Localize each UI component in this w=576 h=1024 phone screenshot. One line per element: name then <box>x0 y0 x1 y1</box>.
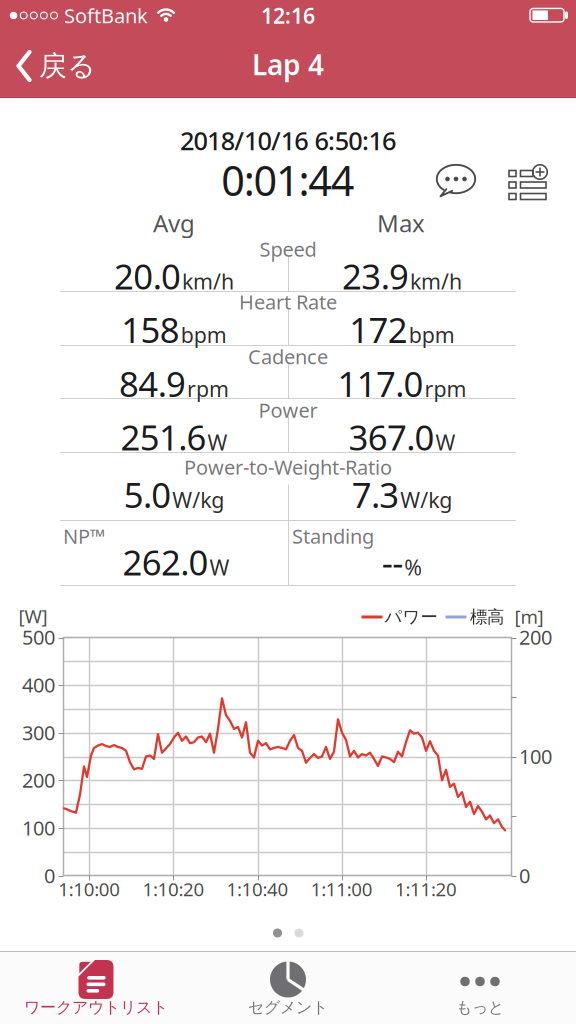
button[interactable]: 戻る <box>16 49 96 83</box>
staticText: Power-to-Weight-Ratio <box>184 454 392 480</box>
staticText: 12:16 <box>261 1 315 30</box>
staticText: 0:01:44 <box>221 153 355 207</box>
staticText: 標高 <box>470 606 504 628</box>
staticText: 1:10:20 <box>142 877 204 901</box>
staticText: 100 <box>519 743 552 769</box>
staticText: 5.0 <box>124 471 171 517</box>
staticText: [W] <box>18 604 47 628</box>
button[interactable]: もっと <box>384 952 576 1024</box>
staticText: 158 <box>121 306 180 352</box>
staticText: 戻る <box>39 49 96 83</box>
staticText: 262.0 <box>122 539 209 585</box>
staticText: bpm <box>181 320 227 349</box>
staticText: 7.3 <box>352 471 399 517</box>
staticText: 400 <box>22 671 55 698</box>
staticText: 367.0 <box>348 414 435 460</box>
staticText: 1:11:00 <box>311 877 373 901</box>
staticText: km/h <box>410 267 462 295</box>
staticText: 23.9 <box>342 253 409 299</box>
staticText: 172 <box>349 306 408 352</box>
staticText: 1:11:20 <box>395 877 457 901</box>
staticText: 500 <box>22 624 55 650</box>
staticText: 0 <box>519 862 530 889</box>
staticText: 117.0 <box>337 360 424 406</box>
button[interactable]: ワークアウトリスト <box>0 952 192 1024</box>
staticText: もっと <box>456 998 504 1017</box>
staticText: -- <box>382 539 403 585</box>
staticText: rpm <box>187 374 229 403</box>
button[interactable]: セグメント <box>192 952 384 1024</box>
staticText: 200 <box>22 767 55 793</box>
staticText: % <box>404 553 422 581</box>
staticText: W/kg <box>172 485 224 514</box>
staticText: セグメント <box>248 998 328 1017</box>
staticText: 1:10:00 <box>58 877 120 901</box>
staticText: 251.6 <box>120 414 207 460</box>
staticText: SoftBank <box>64 2 148 29</box>
staticText: 20.0 <box>114 253 181 299</box>
button[interactable] <box>436 164 476 200</box>
staticText: NP™ <box>63 523 105 549</box>
staticText: km/h <box>182 267 234 295</box>
staticText: 84.9 <box>119 360 186 406</box>
staticText: W <box>208 428 228 456</box>
staticText: W <box>210 553 230 581</box>
staticText: 2018/10/16 6:50:16 <box>180 124 396 157</box>
staticText: Power <box>258 397 317 423</box>
staticText: 1:10:40 <box>227 877 289 901</box>
staticText: Speed <box>259 236 316 262</box>
staticText: W <box>436 428 456 456</box>
staticText: [m] <box>514 604 543 629</box>
staticText: パワー <box>384 606 437 628</box>
button[interactable] <box>505 165 547 201</box>
staticText: Standing <box>292 523 374 549</box>
staticText: 100 <box>22 814 55 841</box>
staticText: Lap 4 <box>252 46 324 83</box>
staticText: W/kg <box>400 485 452 514</box>
staticText: 200 <box>519 624 552 650</box>
staticText: 300 <box>22 719 55 746</box>
staticText: ワークアウトリスト <box>24 998 168 1017</box>
staticText: bpm <box>409 320 455 349</box>
staticText: Heart Rate <box>239 288 337 315</box>
staticText: Avg <box>153 207 195 239</box>
staticText: rpm <box>425 374 467 403</box>
staticText: Cadence <box>248 343 328 370</box>
staticText: Max <box>377 207 425 239</box>
staticText: 0 <box>44 862 55 889</box>
